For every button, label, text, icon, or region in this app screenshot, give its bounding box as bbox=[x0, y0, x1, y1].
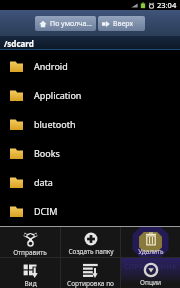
staticText: Опции bbox=[140, 278, 161, 287]
staticText: Сортировка по bbox=[67, 279, 114, 288]
staticText: Создать папку bbox=[68, 247, 114, 256]
button[interactable]: View bbox=[0, 258, 60, 288]
staticText: СПРАВОЧНИК bbox=[124, 261, 178, 271]
button[interactable]: Вверх bbox=[98, 16, 145, 31]
other: More options bbox=[144, 263, 158, 277]
staticText: Books bbox=[34, 147, 60, 159]
staticText: 23:04 bbox=[157, 0, 177, 10]
button[interactable]: bluetooth bbox=[0, 108, 180, 137]
button[interactable]: Share bbox=[0, 227, 60, 257]
staticText: Android bbox=[34, 60, 68, 72]
staticText: Вверх bbox=[113, 19, 134, 29]
button[interactable]: DCIM bbox=[0, 195, 180, 224]
button[interactable]: Books bbox=[0, 137, 180, 166]
button[interactable]: СПРАВОЧНИК bbox=[121, 258, 180, 288]
staticText: Вид bbox=[24, 279, 37, 288]
staticText: Отправить bbox=[13, 248, 47, 257]
staticText: DCIM bbox=[34, 205, 58, 217]
staticText: Удалить bbox=[138, 247, 164, 256]
button[interactable]: По умолча... bbox=[35, 16, 96, 31]
staticText: По умолча... bbox=[50, 19, 92, 29]
staticText: data bbox=[34, 176, 53, 188]
other: Create folder bbox=[84, 232, 98, 246]
staticText: Application bbox=[34, 89, 82, 101]
button[interactable]: data bbox=[0, 166, 180, 195]
other: Share bbox=[23, 232, 38, 247]
other: Delete bbox=[144, 232, 158, 246]
button[interactable]: Sort by bbox=[61, 258, 120, 288]
other: Sort by bbox=[83, 263, 98, 278]
button[interactable]: Application bbox=[0, 79, 180, 108]
staticText: /sdcard bbox=[4, 38, 34, 49]
button[interactable]: Android bbox=[0, 50, 180, 79]
button[interactable]: Create folder bbox=[61, 227, 120, 257]
other: View bbox=[23, 263, 38, 278]
staticText: bluetooth bbox=[34, 118, 76, 130]
button[interactable]: Delete bbox=[121, 227, 180, 257]
